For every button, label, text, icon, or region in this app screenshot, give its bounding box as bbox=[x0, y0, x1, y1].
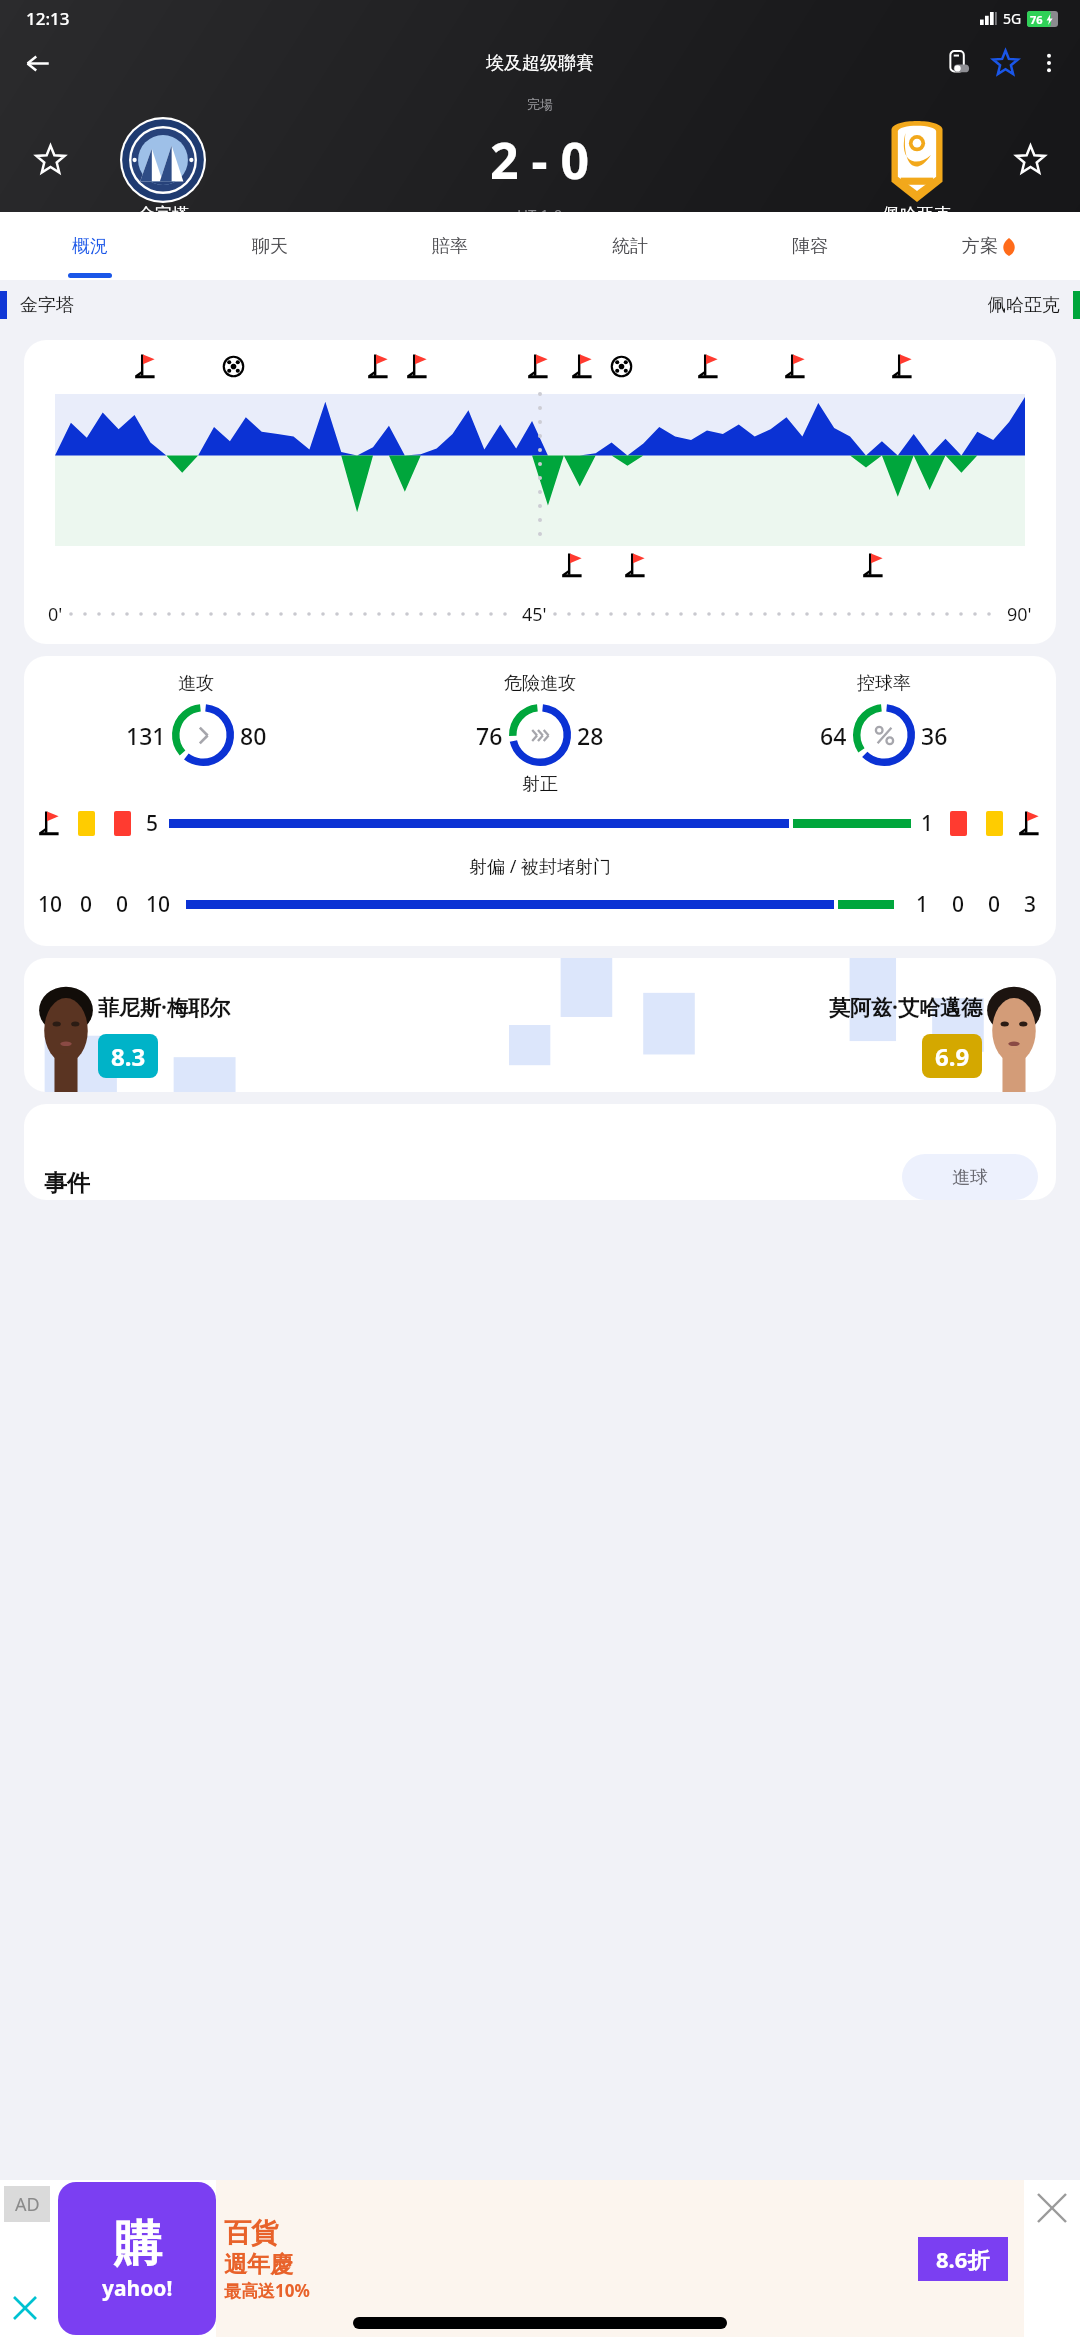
staticText: 事件 bbox=[44, 1169, 90, 1198]
staticText: 賠率 bbox=[432, 235, 468, 258]
button[interactable]: Close ad bbox=[8, 2291, 42, 2325]
staticText: 聊天 bbox=[252, 235, 288, 258]
button[interactable]: Dismiss advertisement bbox=[1024, 2180, 1080, 2337]
button[interactable]: Favourite Pyramids bbox=[0, 116, 100, 204]
staticText: AD bbox=[15, 2192, 40, 2217]
button[interactable]: 百貨 bbox=[216, 2180, 1024, 2337]
button[interactable]: 0' bbox=[24, 340, 1056, 644]
staticText: 莫阿兹·艾哈邁德 bbox=[829, 993, 982, 1022]
staticText: 金字塔 bbox=[138, 204, 189, 212]
button[interactable]: 賠率 bbox=[360, 212, 540, 280]
button[interactable]: 進攻 bbox=[24, 656, 1056, 946]
staticText: 金字塔 bbox=[20, 294, 74, 317]
staticText: 76 bbox=[476, 720, 503, 751]
staticText: 12:13 bbox=[26, 7, 70, 30]
staticText: 方案 bbox=[962, 235, 998, 258]
button[interactable]: 陣容 bbox=[720, 212, 900, 280]
button[interactable]: 進球 bbox=[902, 1154, 1038, 1200]
button[interactable]: 統計 bbox=[540, 212, 720, 280]
staticText: 週年慶 bbox=[224, 2250, 293, 2279]
staticText: yahoo! bbox=[102, 2274, 173, 2303]
staticText: 0 bbox=[988, 890, 1001, 919]
staticText: 1 bbox=[921, 809, 934, 838]
staticText: 28 bbox=[577, 720, 604, 751]
staticText: 埃及超级聯賽 bbox=[486, 52, 594, 75]
staticText: 菲尼斯·梅耶尔 bbox=[98, 993, 230, 1022]
staticText: 百貨 bbox=[224, 2216, 278, 2250]
button[interactable]: Favourite Pharco bbox=[980, 116, 1080, 204]
staticText: 36 bbox=[921, 720, 948, 751]
staticText: 陣容 bbox=[792, 235, 828, 258]
staticText: 購 bbox=[114, 2214, 162, 2274]
staticText: 射正 bbox=[24, 773, 1056, 796]
staticText: 6.9 bbox=[935, 1040, 970, 1073]
staticText: 0 bbox=[116, 890, 129, 919]
button[interactable]: More options bbox=[1028, 42, 1070, 84]
button[interactable]: 控球率 bbox=[712, 672, 1056, 767]
staticText: 射偏 / 被封堵射门 bbox=[24, 854, 1056, 879]
staticText: 3 bbox=[1024, 890, 1037, 919]
button[interactable]: 購 bbox=[58, 2182, 216, 2335]
button[interactable]: 進攻 bbox=[24, 672, 368, 767]
button[interactable]: 聊天 bbox=[180, 212, 360, 280]
staticText: 5 bbox=[146, 809, 159, 838]
staticText: 危險進攻 bbox=[504, 672, 576, 695]
staticText: 5G bbox=[1003, 9, 1022, 28]
staticText: 進攻 bbox=[178, 672, 214, 695]
staticText: 進球 bbox=[952, 1166, 988, 1189]
staticText: 131 bbox=[126, 720, 166, 751]
staticText: 統計 bbox=[612, 235, 648, 258]
staticText: 45' bbox=[522, 602, 547, 627]
staticText: 1 bbox=[916, 890, 929, 919]
staticText: 10 bbox=[146, 890, 171, 919]
staticText: 0' bbox=[48, 602, 63, 627]
staticText: HT 1-0 bbox=[517, 204, 563, 212]
staticText: 控球率 bbox=[857, 672, 911, 695]
staticText: 10 bbox=[38, 890, 63, 919]
button[interactable]: 事件 bbox=[24, 1104, 1056, 1200]
staticText: 0 bbox=[80, 890, 93, 919]
button[interactable]: Back bbox=[12, 38, 62, 88]
button[interactable]: 危險進攻 bbox=[368, 672, 712, 767]
button[interactable]: 菲尼斯·梅耶尔 bbox=[24, 958, 1056, 1092]
staticText: 完場 bbox=[0, 96, 1080, 112]
staticText: 90' bbox=[1007, 602, 1032, 627]
staticText: 最高送10% bbox=[224, 2279, 310, 2302]
staticText: 0 bbox=[952, 890, 965, 919]
staticText: 概況 bbox=[72, 235, 108, 258]
staticText: 80 bbox=[240, 720, 267, 751]
button[interactable]: Favourite bbox=[982, 40, 1028, 86]
button[interactable]: 概況 bbox=[0, 212, 180, 280]
button[interactable]: Notification settings bbox=[936, 40, 982, 86]
staticText: 佩哈亞克 bbox=[988, 294, 1060, 317]
staticText: 8.6折 bbox=[936, 2244, 990, 2274]
staticText: 8.3 bbox=[111, 1040, 146, 1073]
button[interactable]: 方案 bbox=[900, 212, 1080, 280]
staticText: 佩哈亞克 bbox=[883, 204, 951, 212]
staticText: 76 bbox=[1030, 12, 1043, 27]
staticText: 2 - 0 bbox=[490, 126, 590, 194]
staticText: 64 bbox=[820, 720, 847, 751]
